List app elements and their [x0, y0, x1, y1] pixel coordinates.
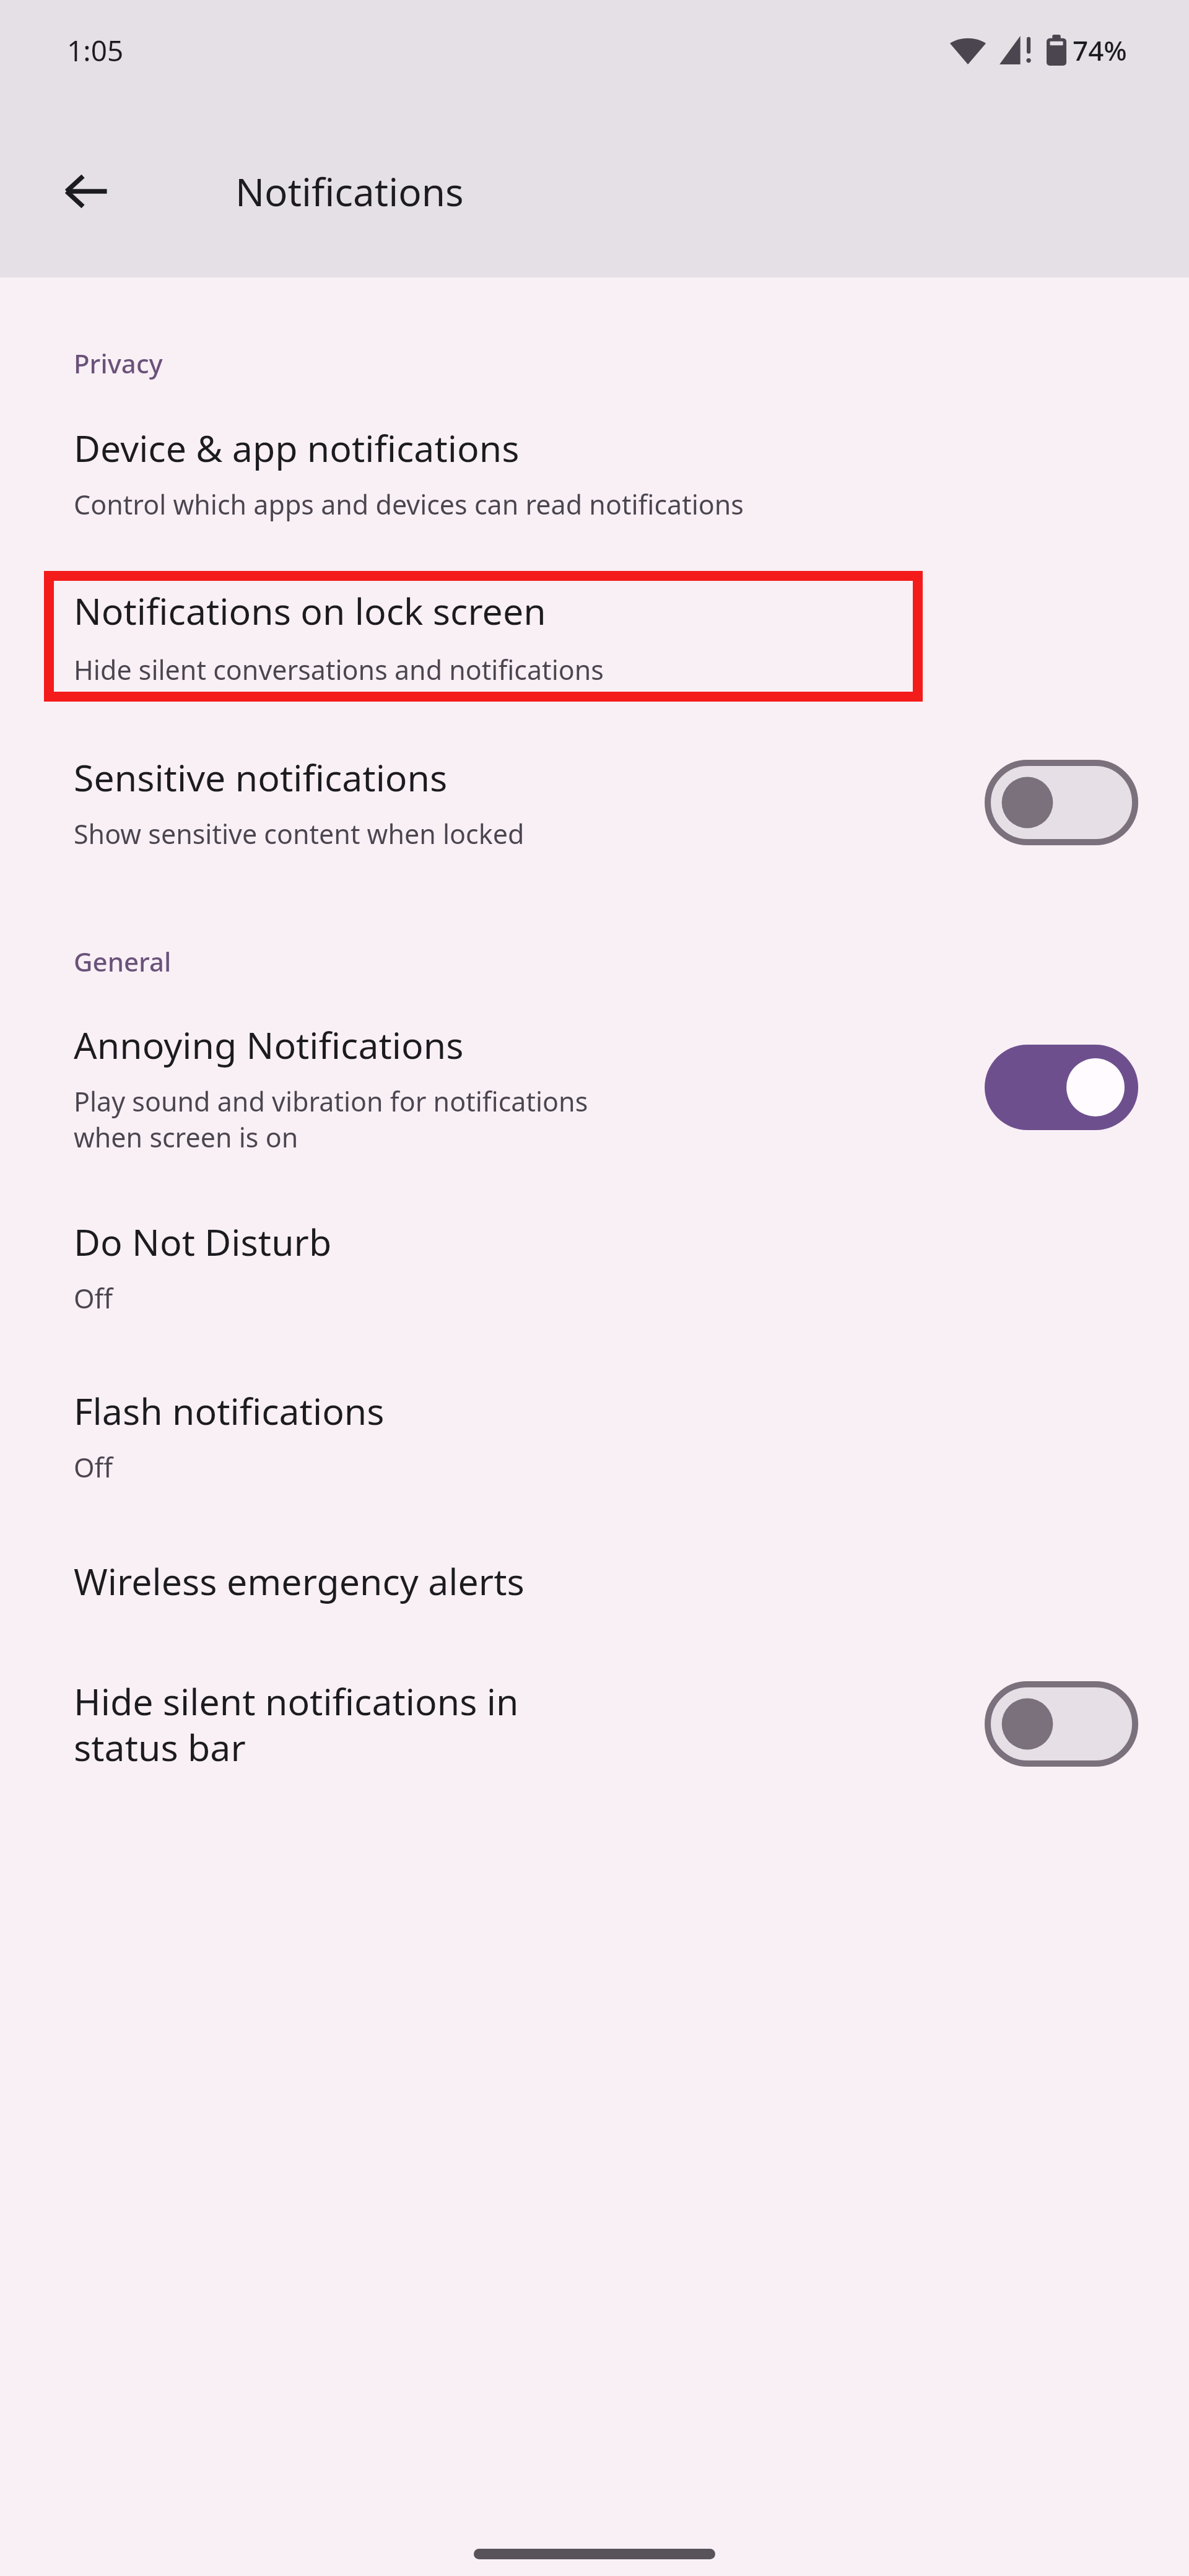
staticText: Hide silent notifications in status bar	[74, 1676, 519, 1772]
staticText: Notifications	[235, 165, 464, 217]
button[interactable]: Hide silent notifications in status bar	[0, 1606, 1189, 1772]
staticText: Off	[74, 1449, 113, 1486]
staticText: Off	[74, 1280, 113, 1316]
staticText: Play sound and vibration for notificatio…	[74, 1083, 588, 1155]
button[interactable]: Annoying Notifications	[0, 979, 1189, 1155]
staticText: General	[74, 944, 172, 979]
staticText: Flash notifications	[74, 1386, 385, 1435]
staticText: 1:05	[67, 31, 124, 70]
staticText: Do Not Disturb	[74, 1217, 332, 1266]
button[interactable]: Device & app notifications	[0, 381, 1189, 523]
button[interactable]: Off	[985, 1681, 1138, 1767]
button[interactable]: Sensitive notifications	[0, 702, 1189, 852]
button[interactable]: Do Not Disturb	[0, 1155, 1189, 1316]
button[interactable]: Off	[985, 760, 1138, 845]
staticText: Sensitive notifications	[74, 752, 448, 802]
staticText: Annoying Notifications	[74, 1020, 464, 1069]
button[interactable]: Flash notifications	[0, 1316, 1189, 1486]
staticText: Device & app notifications	[74, 423, 520, 472]
staticText: Privacy	[74, 346, 163, 381]
button[interactable]: Back	[43, 148, 130, 235]
staticText: Wireless emergency alerts	[74, 1556, 525, 1606]
staticText: Control which apps and devices can read …	[74, 486, 744, 523]
button[interactable]: On	[985, 1045, 1138, 1130]
button[interactable]: Wireless emergency alerts	[0, 1486, 1189, 1606]
staticText: 74%	[1073, 32, 1127, 69]
staticText: Notifications on lock screen	[74, 586, 546, 635]
button[interactable]: Notifications on lock screen	[44, 571, 923, 702]
staticText: Hide silent conversations and notificati…	[74, 651, 604, 688]
staticText: Show sensitive content when locked	[74, 816, 525, 852]
